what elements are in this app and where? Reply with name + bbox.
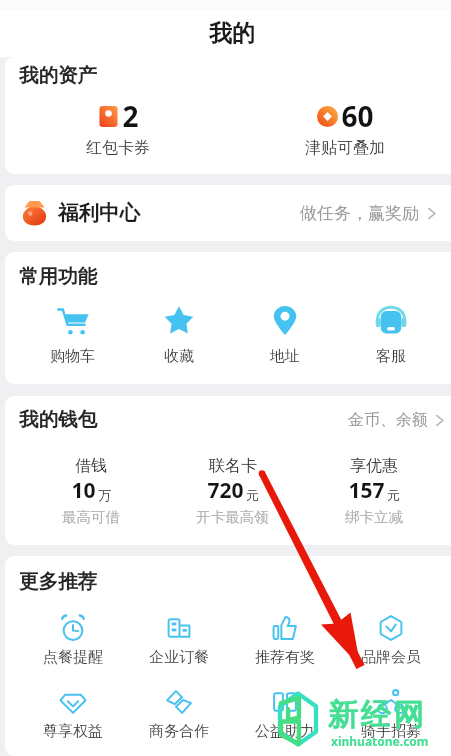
button[interactable]: 客服 — [338, 304, 444, 366]
button[interactable]: 点餐提醒 — [19, 615, 126, 667]
button[interactable]: 联名卡 — [162, 456, 303, 526]
staticText: 新经网 — [326, 696, 425, 734]
staticText: 点餐提醒 — [43, 648, 103, 667]
button[interactable]: 品牌会员 — [338, 615, 444, 667]
staticText: 我的 — [209, 19, 255, 48]
button[interactable]: 企业订餐 — [126, 615, 232, 667]
staticText: 客服 — [376, 347, 406, 366]
button[interactable]: 地址 — [232, 304, 338, 366]
staticText: 最高可借 — [62, 508, 120, 526]
staticText: 常用功能 — [19, 264, 97, 289]
staticText: 我的资产 — [19, 63, 97, 88]
button[interactable]: 公益助力 — [232, 689, 338, 741]
button[interactable]: 购物车 — [19, 304, 126, 366]
button[interactable]: 商务合作 — [126, 689, 232, 741]
staticText: 2 — [122, 97, 139, 135]
button[interactable]: 福利中心 — [5, 185, 451, 241]
button[interactable]: 借钱 — [20, 456, 162, 526]
button[interactable]: 60 — [305, 97, 385, 158]
staticText: 福利中心 — [58, 200, 140, 226]
button[interactable]: 尊享权益 — [19, 689, 126, 741]
button[interactable]: 收藏 — [126, 304, 232, 366]
staticText: 享优惠 — [350, 456, 398, 476]
staticText: 做任务，赢奖励 — [300, 203, 419, 224]
staticText: 津贴可叠加 — [305, 138, 385, 158]
staticText: 元 — [246, 487, 259, 503]
staticText: 企业订餐 — [149, 648, 209, 667]
staticText: 10 — [71, 476, 96, 505]
button[interactable]: 2 — [86, 97, 150, 158]
staticText: 骑手招募 — [361, 722, 421, 741]
staticText: 更多推荐 — [19, 569, 97, 594]
staticText: 品牌会员 — [361, 648, 421, 667]
button[interactable]: 推荐有奖 — [232, 615, 338, 667]
button[interactable]: 骑手招募 — [338, 689, 444, 741]
staticText: 商务合作 — [149, 722, 209, 741]
staticText: 720 — [207, 476, 244, 505]
staticText: 购物车 — [50, 347, 95, 366]
staticText: 金币、余额 — [348, 410, 428, 430]
staticText: 借钱 — [75, 456, 107, 476]
button[interactable]: 享优惠 — [303, 456, 444, 526]
staticText: xinhuatone.com — [331, 733, 429, 749]
staticText: 地址 — [270, 347, 300, 366]
staticText: 元 — [387, 487, 400, 503]
staticText: 推荐有奖 — [255, 648, 315, 667]
staticText: 尊享权益 — [43, 722, 103, 741]
staticText: 公益助力 — [255, 722, 315, 741]
button[interactable]: 金币、余额 — [348, 410, 446, 430]
staticText: 红包卡券 — [86, 138, 150, 158]
staticText: 收藏 — [164, 347, 194, 366]
staticText: 联名卡 — [209, 456, 257, 476]
staticText: 157 — [348, 476, 385, 505]
staticText: 60 — [341, 97, 374, 135]
staticText: 我的钱包 — [19, 407, 97, 432]
staticText: 万 — [98, 487, 111, 503]
staticText: 开卡最高领 — [196, 508, 269, 526]
staticText: 绑卡立减 — [345, 508, 403, 526]
